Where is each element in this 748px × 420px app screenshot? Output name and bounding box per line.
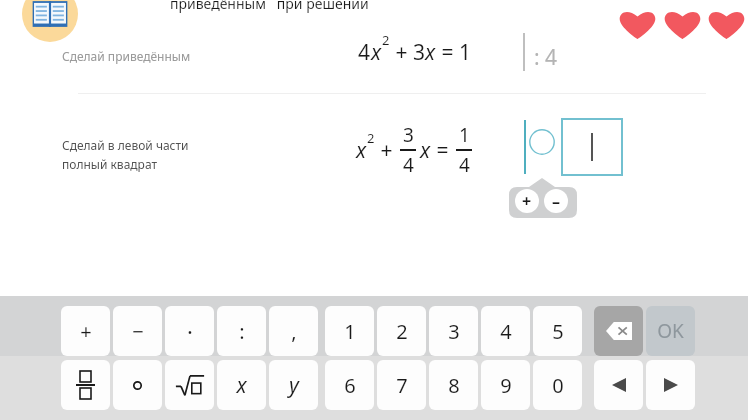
staticText: 4 xyxy=(500,318,512,345)
staticText: · xyxy=(187,316,193,346)
button[interactable]: Move right xyxy=(646,360,695,410)
staticText: 2 xyxy=(367,129,375,147)
staticText: 4 xyxy=(403,152,414,178)
staticText: 6 xyxy=(344,372,356,399)
staticText: Сделай приведённым xyxy=(62,48,191,64)
staticText: 2 xyxy=(396,318,408,345)
staticText: 1 xyxy=(344,318,356,345)
button[interactable]: Move left xyxy=(594,360,643,410)
button[interactable]: 0 xyxy=(533,360,582,410)
button[interactable]: , xyxy=(269,306,318,356)
button[interactable]: Minus xyxy=(544,189,568,213)
staticText: 0 xyxy=(552,372,564,399)
staticText: 2 xyxy=(382,31,390,49)
staticText: 5 xyxy=(552,318,564,345)
staticText: x xyxy=(371,38,382,67)
button[interactable]: 4 xyxy=(481,306,530,356)
staticText: 3 xyxy=(448,318,460,345)
staticText: 4 xyxy=(459,152,470,178)
staticText: , xyxy=(291,318,297,345)
button[interactable]: x xyxy=(217,360,266,410)
button[interactable]: 5 xyxy=(533,306,582,356)
button[interactable]: + xyxy=(61,306,110,356)
button[interactable]: − xyxy=(113,306,162,356)
button[interactable]: 8 xyxy=(429,360,478,410)
staticText: = 1 xyxy=(436,38,471,67)
button[interactable]: 6 xyxy=(325,360,374,410)
button[interactable]: : xyxy=(217,306,266,356)
staticText: x xyxy=(236,371,247,400)
staticText: − xyxy=(132,318,144,345)
staticText: x xyxy=(425,38,436,67)
button[interactable]: Backspace xyxy=(594,306,643,356)
staticText: полный квадрат xyxy=(62,156,158,172)
button[interactable]: 1 xyxy=(325,306,374,356)
staticText: y xyxy=(289,371,299,400)
staticText: + xyxy=(522,190,532,212)
staticText: приведённым при решении xyxy=(170,0,369,13)
staticText: OK xyxy=(657,318,684,344)
button[interactable]: Placeholder xyxy=(529,129,555,155)
staticText: x xyxy=(356,136,367,165)
staticText: 1 xyxy=(459,122,470,148)
staticText: + xyxy=(80,318,92,345)
button[interactable]: OK xyxy=(646,306,695,356)
button[interactable]: y xyxy=(269,360,318,410)
button[interactable] xyxy=(165,360,214,410)
staticText: + 3 xyxy=(390,38,425,67)
staticText: 8 xyxy=(448,372,460,399)
button[interactable]: 3 xyxy=(429,306,478,356)
button[interactable]: 9 xyxy=(481,360,530,410)
staticText: 4 xyxy=(358,38,371,67)
button[interactable]: Plus xyxy=(515,189,539,213)
button[interactable] xyxy=(113,360,162,410)
button[interactable]: · xyxy=(165,306,214,356)
button[interactable]: 2 xyxy=(377,306,426,356)
staticText: : xyxy=(239,318,245,345)
staticText: 3 xyxy=(403,122,414,148)
button[interactable]: Input field xyxy=(561,118,623,176)
staticText: + xyxy=(375,136,398,165)
staticText: 9 xyxy=(500,372,512,399)
staticText: – xyxy=(552,190,561,212)
staticText: : 4 xyxy=(534,43,558,72)
staticText: 7 xyxy=(396,372,408,399)
button[interactable]: 7 xyxy=(377,360,426,410)
staticText: x xyxy=(420,136,431,165)
staticText: = xyxy=(431,136,454,165)
button[interactable] xyxy=(61,360,110,410)
staticText: Сделай в левой части xyxy=(62,137,189,153)
